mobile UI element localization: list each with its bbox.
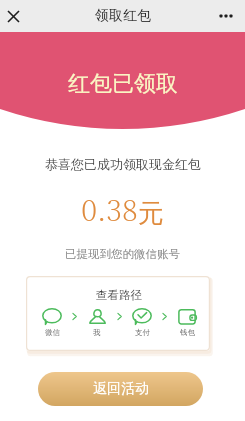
- button[interactable]: Close: [0, 0, 27, 32]
- staticText: 我: [93, 328, 101, 337]
- staticText: 返回活动: [93, 380, 149, 398]
- staticText: 钱包: [180, 328, 195, 337]
- staticText: 领取红包: [95, 7, 151, 25]
- staticText: 支付: [135, 328, 150, 337]
- staticText: 查看路径: [96, 288, 142, 302]
- button[interactable]: 返回活动: [38, 372, 203, 406]
- staticText: 元: [138, 197, 164, 230]
- staticText: 恭喜您已成功领取现金红包: [45, 156, 201, 172]
- staticText: 微信: [45, 328, 60, 337]
- staticText: 红包已领取: [68, 70, 178, 98]
- staticText: 已提现到您的微信账号: [65, 247, 180, 261]
- button[interactable]: More options: [206, 0, 245, 32]
- staticText: 0.38: [81, 188, 138, 230]
